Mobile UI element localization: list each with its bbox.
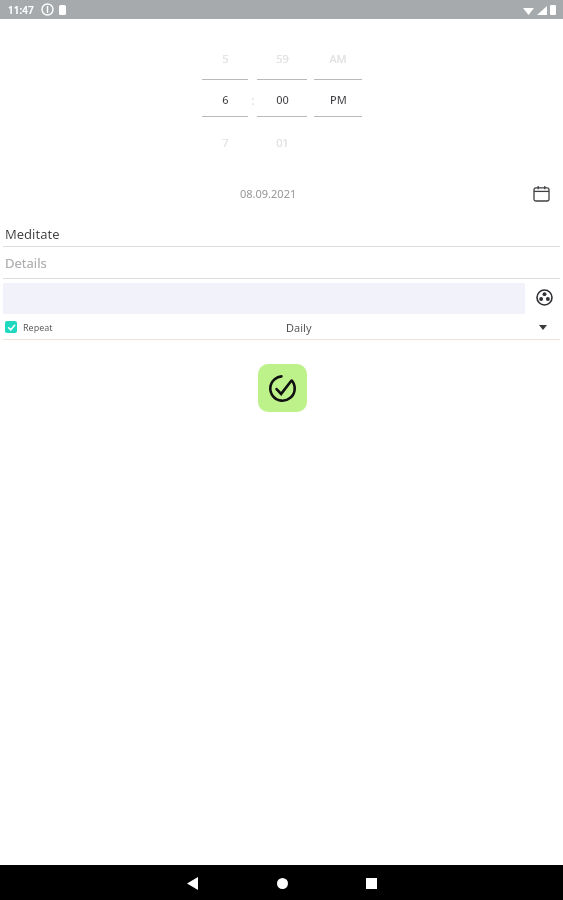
- staticText: Meditate: [5, 225, 60, 243]
- staticText: AM: [329, 51, 347, 66]
- staticText: 5: [222, 51, 229, 66]
- staticText: PM: [330, 92, 347, 107]
- staticText: 11:47: [8, 3, 34, 17]
- staticText: Details: [5, 254, 47, 272]
- staticText: 00: [276, 92, 289, 107]
- button[interactable]: Save: [258, 364, 307, 412]
- button[interactable]: 59: [257, 36, 307, 156]
- button[interactable]: Pick date: [529, 181, 553, 205]
- staticText: 6: [222, 92, 229, 107]
- button[interactable]: Daily: [286, 320, 312, 335]
- button[interactable]: Pick colour: [531, 284, 557, 310]
- button[interactable]: 5: [202, 36, 248, 156]
- button[interactable]: Repeat interval: [533, 317, 553, 337]
- button[interactable]: Meditate: [0, 221, 563, 247]
- button[interactable]: 08.09.2021: [240, 186, 297, 201]
- button[interactable]: Repeat: [5, 321, 53, 333]
- staticText: Repeat: [23, 321, 53, 333]
- button[interactable]: Recents: [355, 867, 387, 899]
- button[interactable]: Back: [176, 867, 208, 899]
- button[interactable]: AM: [314, 36, 362, 156]
- staticText: :: [251, 91, 255, 109]
- staticText: 01: [276, 135, 289, 150]
- staticText: 59: [276, 51, 289, 66]
- button[interactable]: Details: [0, 247, 563, 279]
- button[interactable]: Home: [266, 867, 298, 899]
- staticText: 7: [222, 135, 229, 150]
